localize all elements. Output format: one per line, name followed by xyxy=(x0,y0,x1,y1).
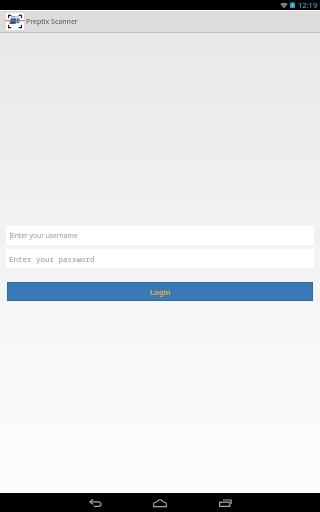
staticText: 12:19 xyxy=(298,0,318,10)
staticText: Enter your username xyxy=(11,231,78,240)
button[interactable]: Enter your username xyxy=(6,226,314,245)
button[interactable]: Login xyxy=(8,283,312,300)
button[interactable]: Recent apps xyxy=(209,493,241,512)
button[interactable]: Enter your password xyxy=(6,249,314,268)
button[interactable]: Back xyxy=(79,493,111,512)
staticText: Login xyxy=(150,287,171,297)
staticText: Enter your password xyxy=(9,254,95,264)
staticText: Preptix Scanner xyxy=(26,17,78,27)
button[interactable]: Home xyxy=(144,493,176,512)
